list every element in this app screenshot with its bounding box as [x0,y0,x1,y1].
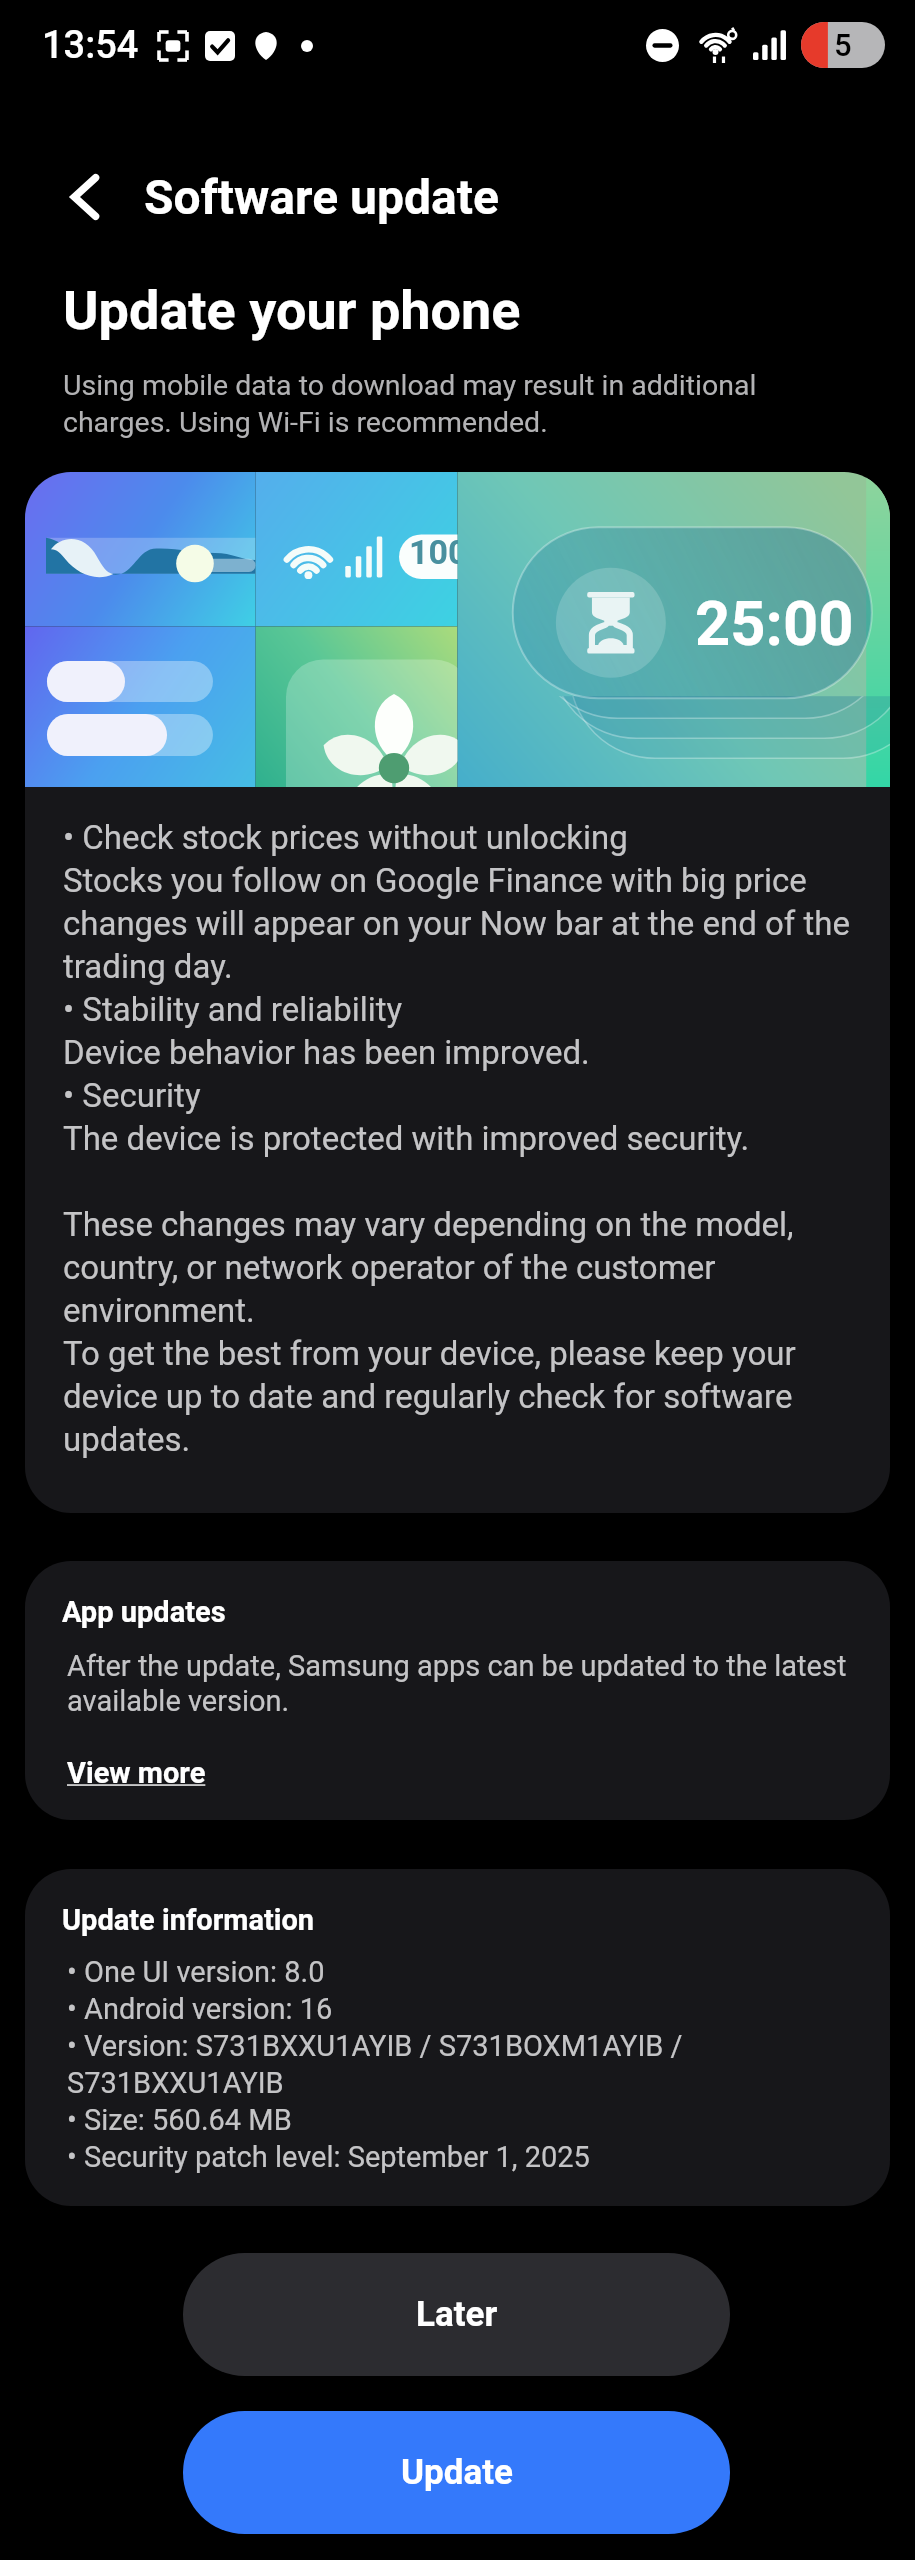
staticText: Update [401,2452,513,2493]
staticText: Update your phone [63,279,521,342]
button[interactable]: View more [67,1756,206,1790]
staticText: • One UI version: 8.0 • Android version:… [67,1955,857,2174]
staticText: Software update [144,169,499,225]
staticText: Using mobile data to download may result… [63,369,813,439]
staticText: Later [416,2294,498,2335]
staticText: Update information [62,1903,315,1937]
button[interactable]: Back [47,159,123,235]
button[interactable]: Update [183,2411,730,2534]
staticText: After the update, Samsung apps can be up… [67,1649,857,1718]
staticText: 5 [834,27,852,63]
button[interactable]: Later [183,2253,730,2376]
staticText: 25:00 [695,588,854,660]
staticText: 100 [409,534,458,572]
staticText: • Check stock prices without unlocking S… [63,818,858,1459]
staticText: App updates [62,1595,226,1629]
staticText: 13:54 [42,23,139,68]
